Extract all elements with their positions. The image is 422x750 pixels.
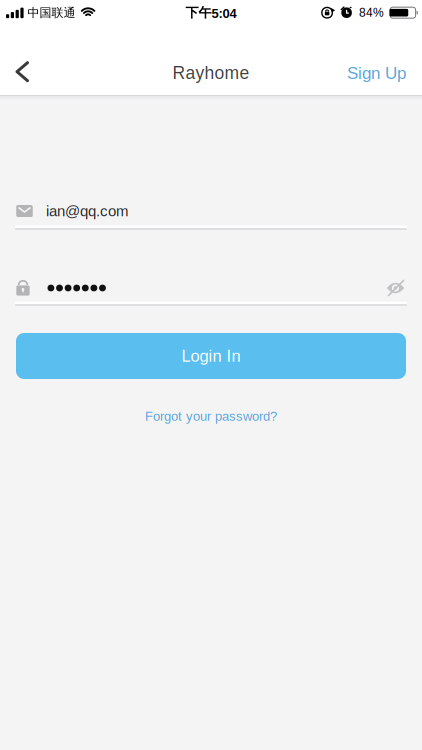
- staticText: Forgot your password?: [145, 409, 277, 423]
- button[interactable]: Email, ian@qq.com: [0, 199, 422, 223]
- button[interactable]: Forgot your password?: [145, 409, 277, 423]
- button[interactable]: Password: [16, 277, 385, 299]
- staticText: Sign Up: [347, 63, 406, 82]
- button[interactable]: Sign Up: [347, 51, 422, 95]
- staticText: 下午5:04: [185, 4, 236, 21]
- staticText: Rayhome: [172, 63, 249, 83]
- button[interactable]: Back: [0, 51, 41, 95]
- staticText: ian@qq.com: [46, 203, 128, 219]
- staticText: 84%: [359, 6, 384, 19]
- staticText: 中国联通: [28, 5, 76, 20]
- button[interactable]: Login In: [16, 333, 406, 379]
- button[interactable]: Show password: [385, 278, 406, 298]
- staticText: Login In: [181, 347, 240, 365]
